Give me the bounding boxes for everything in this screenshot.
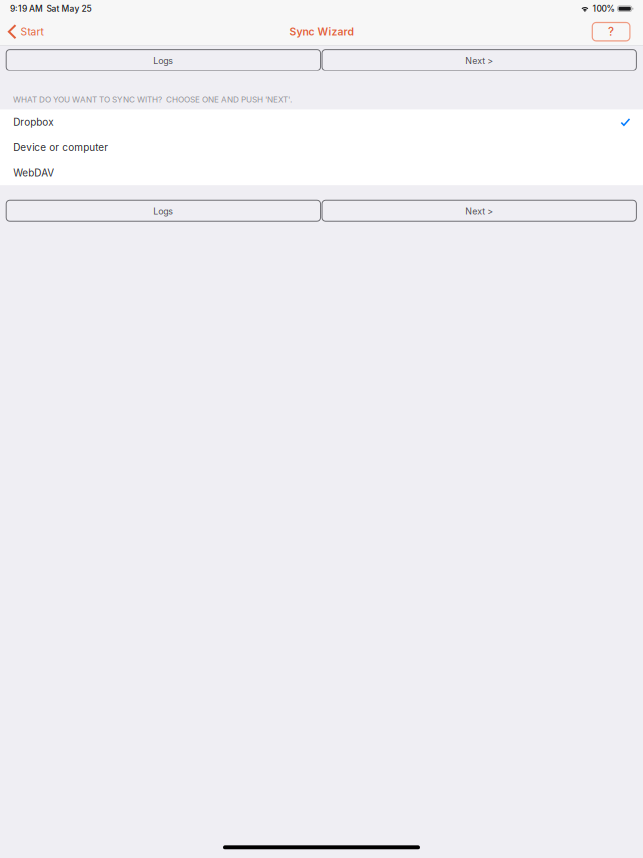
button[interactable]: Next > <box>322 50 636 71</box>
button[interactable]: Start <box>0 17 52 46</box>
staticText: WebDAV <box>13 167 54 179</box>
staticText: Dropbox <box>13 116 53 128</box>
staticText: Logs <box>153 206 173 217</box>
staticText: Next > <box>465 206 493 217</box>
button[interactable]: Next > <box>322 200 636 221</box>
staticText: 9:19 AM <box>10 4 43 14</box>
staticText: Logs <box>153 55 173 66</box>
button[interactable]: Dropbox <box>0 109 643 135</box>
staticText: Start <box>21 25 44 38</box>
staticText: 100% <box>592 4 614 14</box>
button[interactable]: Device or computer <box>0 135 643 160</box>
staticText: Next > <box>465 55 493 66</box>
button[interactable]: Help <box>592 22 630 41</box>
button[interactable]: Logs <box>6 50 320 71</box>
button[interactable]: Logs <box>6 200 320 221</box>
staticText: Sat May 25 <box>46 4 91 14</box>
staticText: Device or computer <box>13 141 108 153</box>
staticText: ? <box>608 25 614 38</box>
staticText: WHAT DO YOU WANT TO SYNC WITH? CHOOSE ON… <box>13 95 292 104</box>
button[interactable]: WebDAV <box>0 160 643 185</box>
staticText: Sync Wizard <box>289 25 353 38</box>
